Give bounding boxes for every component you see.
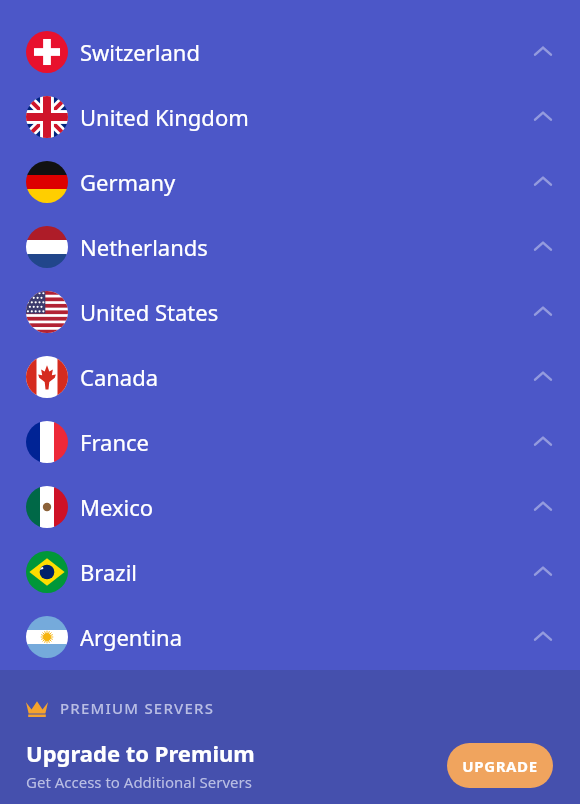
staticText: Netherlands (80, 232, 208, 262)
staticText: UPGRADE (462, 756, 538, 776)
button[interactable]: Canada (0, 344, 580, 409)
staticText: PREMIUM SERVERS (60, 698, 215, 718)
button[interactable]: Argentina (0, 604, 580, 669)
staticText: Canada (80, 362, 159, 392)
button[interactable]: Netherlands (0, 214, 580, 279)
staticText: France (80, 427, 149, 457)
staticText: Argentina (80, 622, 183, 652)
button[interactable]: Mexico (0, 474, 580, 539)
button[interactable]: Brazil (0, 539, 580, 604)
staticText: Get Access to Additional Servers (26, 772, 252, 792)
staticText: Switzerland (80, 37, 200, 67)
button[interactable]: UPGRADE (447, 743, 553, 788)
button[interactable]: United States (0, 279, 580, 344)
staticText: Upgrade to Premium (26, 738, 255, 768)
button[interactable]: France (0, 409, 580, 474)
staticText: Brazil (80, 557, 137, 587)
button[interactable]: Germany (0, 149, 580, 214)
button[interactable]: Switzerland (0, 19, 580, 84)
staticText: United Kingdom (80, 102, 249, 132)
staticText: United States (80, 297, 219, 327)
staticText: Mexico (80, 492, 154, 522)
button[interactable]: United Kingdom (0, 84, 580, 149)
staticText: Germany (80, 167, 176, 197)
